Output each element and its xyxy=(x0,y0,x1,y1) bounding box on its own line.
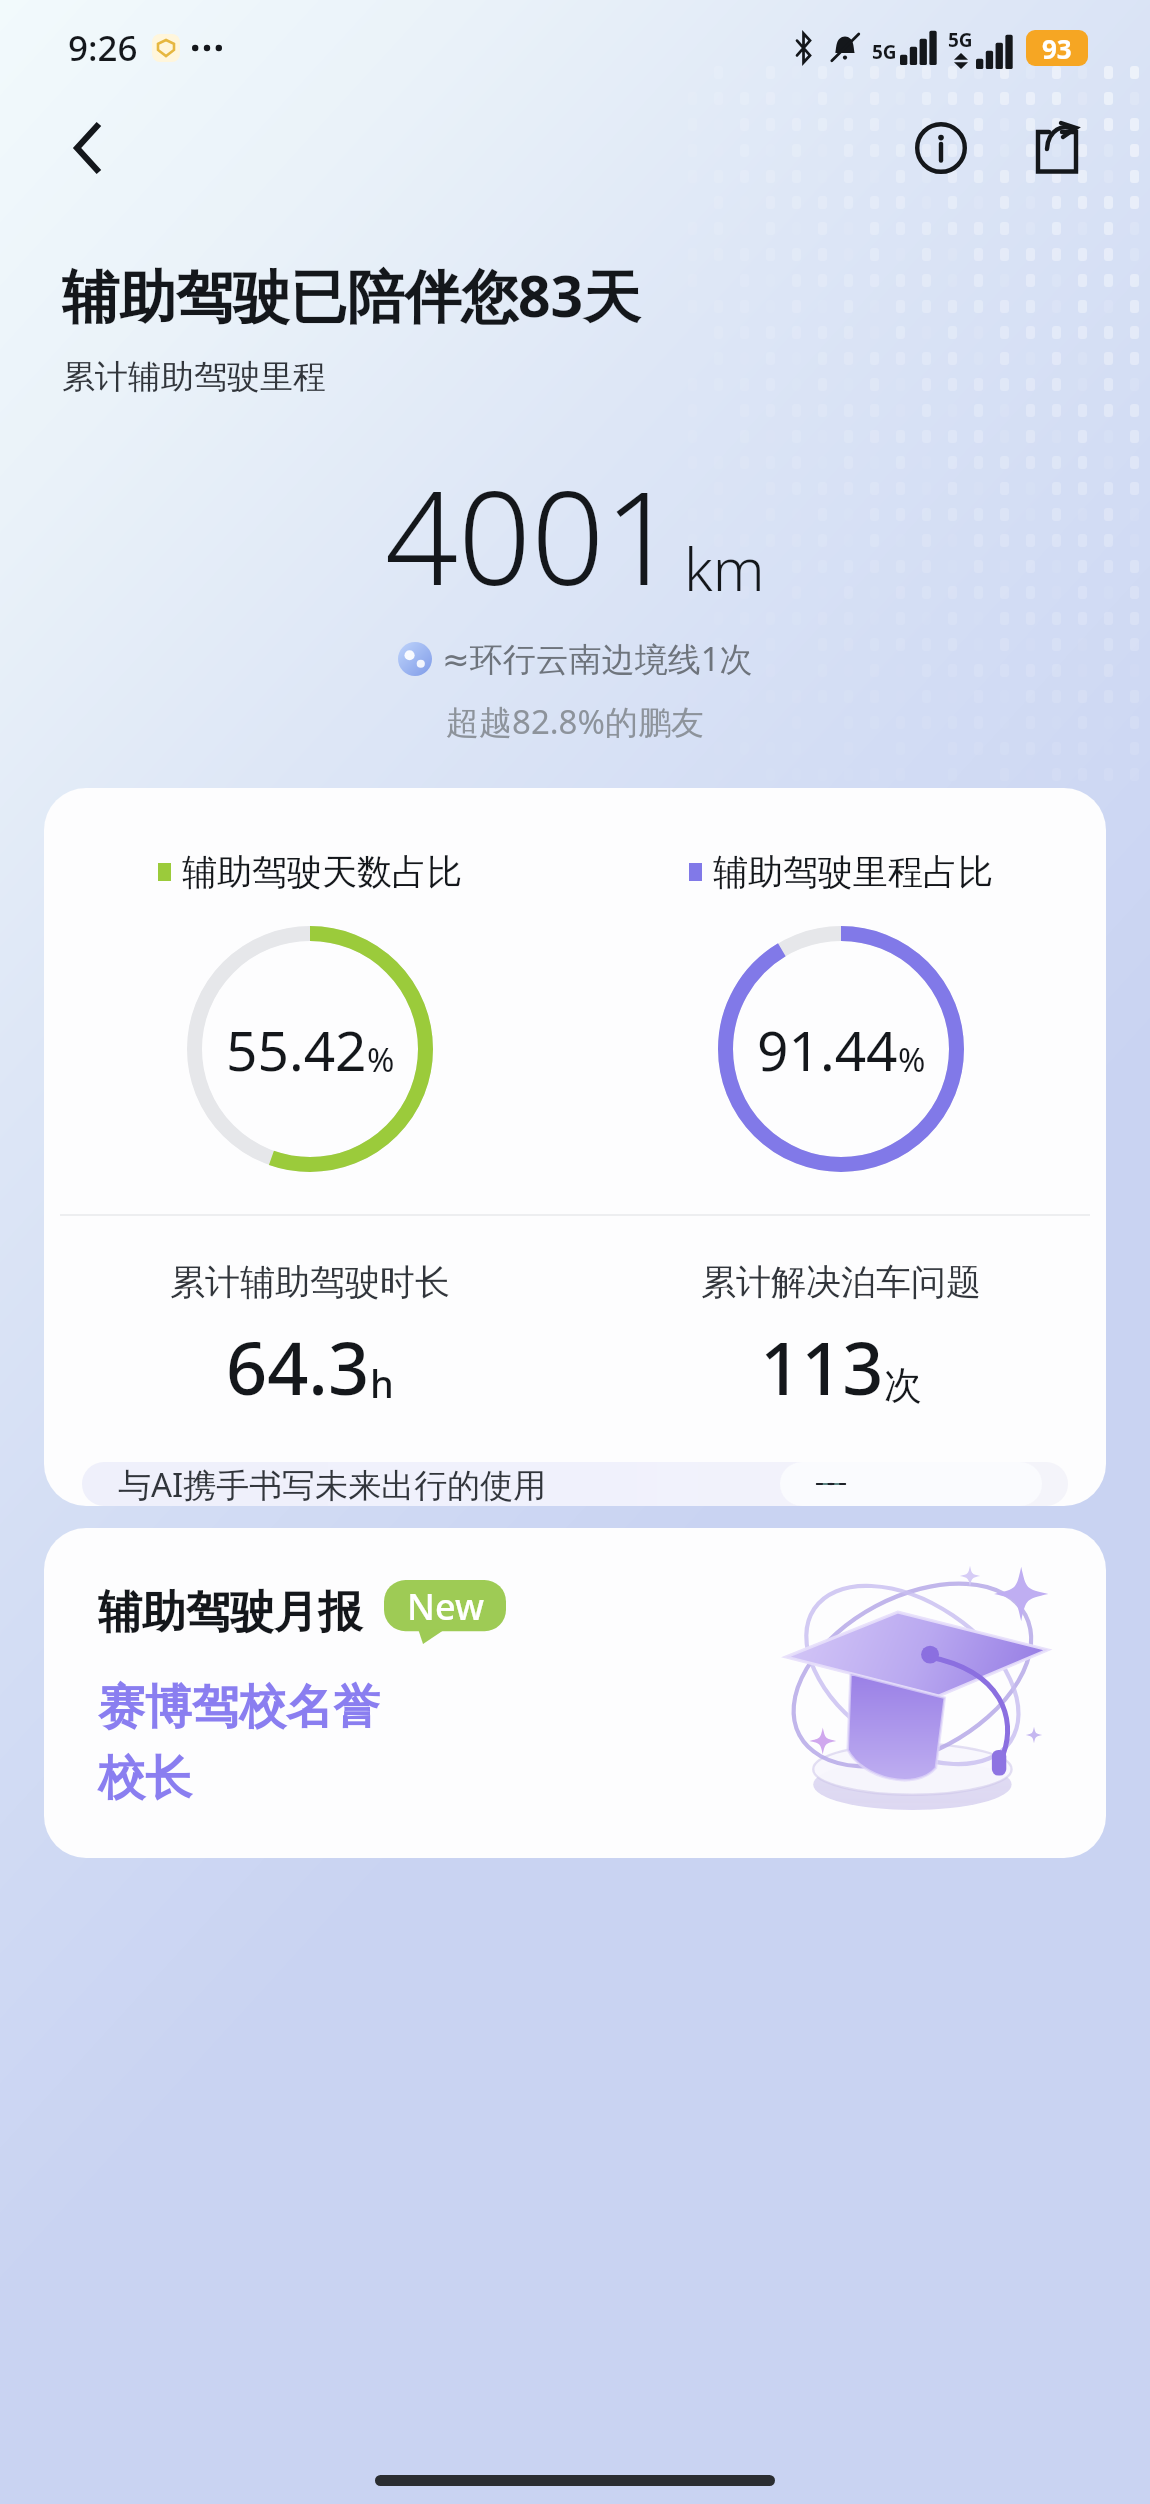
staticText: h xyxy=(370,1357,394,1409)
staticText: 55.42 xyxy=(226,1012,367,1087)
staticText: 校长 xyxy=(98,1749,192,1808)
staticText: 4001 xyxy=(385,448,678,622)
staticText: 9:26 xyxy=(68,24,138,72)
staticText: 超越82.8%的鹏友 xyxy=(446,699,704,744)
staticText: New xyxy=(407,1582,484,1631)
staticText: 113 xyxy=(760,1318,884,1416)
staticText: ≈环行云南边境线1次 xyxy=(442,636,753,681)
staticText: 辅助驾驶月报 xyxy=(98,1585,362,1640)
staticText: 91.44 xyxy=(757,1012,898,1087)
staticText: 5G xyxy=(872,39,897,65)
staticText: 93 xyxy=(1042,31,1072,66)
staticText: 累计辅助驾驶时长 xyxy=(170,1260,450,1304)
staticText: 辅助驾驶里程占比 xyxy=(713,850,993,894)
staticText: % xyxy=(898,1037,926,1082)
staticText: 64.3 xyxy=(226,1318,370,1416)
staticText: 辅助驾驶已陪伴您83天 xyxy=(62,256,641,334)
staticText: 累计辅助驾驶里程 xyxy=(62,356,326,398)
staticText: % xyxy=(367,1037,395,1082)
staticText: 赛博驾校名誉 xyxy=(98,1678,380,1737)
button[interactable]: Info xyxy=(898,105,984,191)
button[interactable]: 辅助驾驶月报 xyxy=(44,1528,1106,1858)
button[interactable]: Share xyxy=(1014,105,1100,191)
staticText: km xyxy=(684,529,765,608)
staticText: 5G xyxy=(948,27,973,53)
staticText: 累计解决泊车问题 xyxy=(701,1260,981,1304)
button[interactable]: 辅助驾驶天数占比 xyxy=(44,788,1106,1506)
button[interactable]: 与AI携手书写未来出行的使用 xyxy=(82,1462,1068,1506)
staticText: 与AI携手书写未来出行的使用 xyxy=(118,1462,547,1506)
staticText: 辅助驾驶天数占比 xyxy=(182,850,462,894)
button[interactable]: 晒晒数据 xyxy=(780,1462,1042,1506)
staticText: 次 xyxy=(884,1361,922,1409)
button[interactable]: Back xyxy=(46,106,130,190)
